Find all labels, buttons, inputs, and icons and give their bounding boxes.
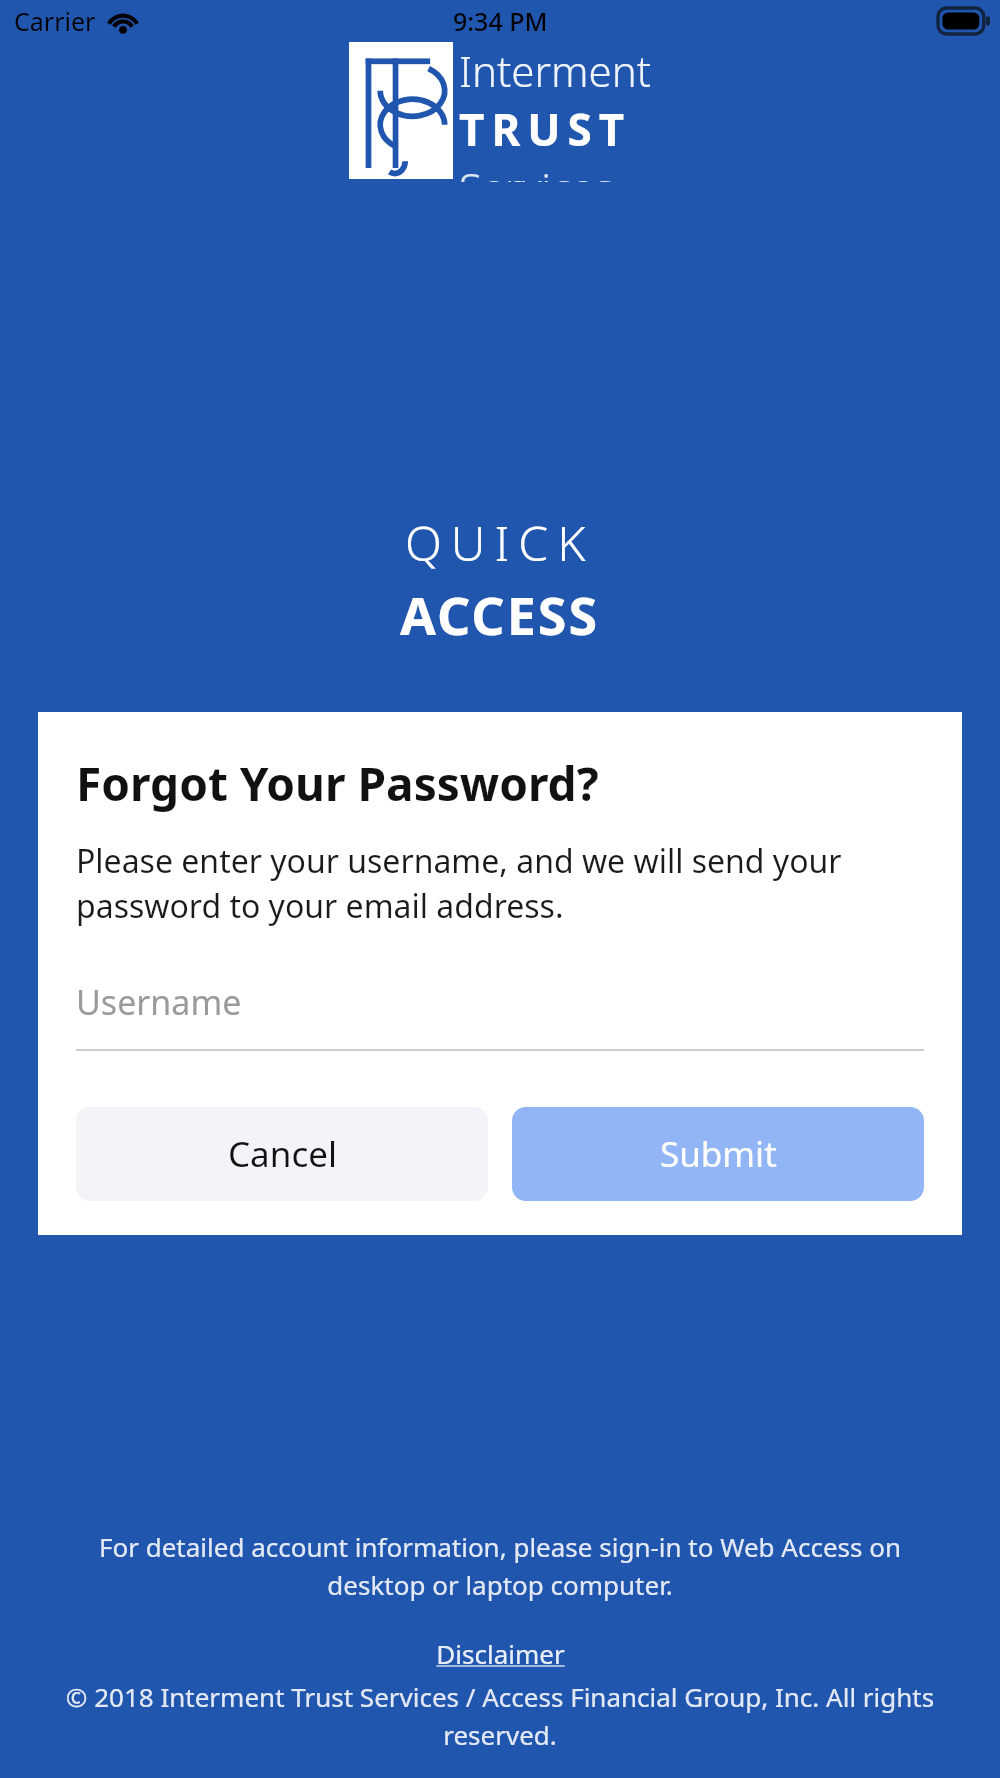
- button[interactable]: Username: [76, 979, 924, 1051]
- staticText: ACCESS: [400, 579, 600, 650]
- staticText: TRUST: [459, 99, 632, 159]
- staticText: Carrier: [14, 4, 96, 38]
- staticText: Interment: [459, 42, 652, 99]
- staticText: Services: [459, 159, 614, 182]
- staticText: Cancel: [228, 1130, 337, 1178]
- staticText: Disclaimer: [436, 1636, 565, 1671]
- staticText: Please enter your username, and we will …: [76, 839, 924, 927]
- staticText: © 2018 Interment Trust Services / Access…: [58, 1679, 942, 1752]
- staticText: Username: [76, 979, 242, 1025]
- staticText: 9:34 PM: [453, 4, 548, 38]
- staticText: QUICK: [405, 510, 595, 575]
- staticText: Submit: [660, 1130, 777, 1178]
- staticText: Forgot Your Password?: [76, 752, 599, 815]
- button[interactable]: Cancel: [76, 1107, 488, 1201]
- button[interactable]: Disclaimer: [436, 1636, 565, 1671]
- staticText: For detailed account information, please…: [58, 1529, 942, 1602]
- button[interactable]: Submit: [512, 1107, 924, 1201]
